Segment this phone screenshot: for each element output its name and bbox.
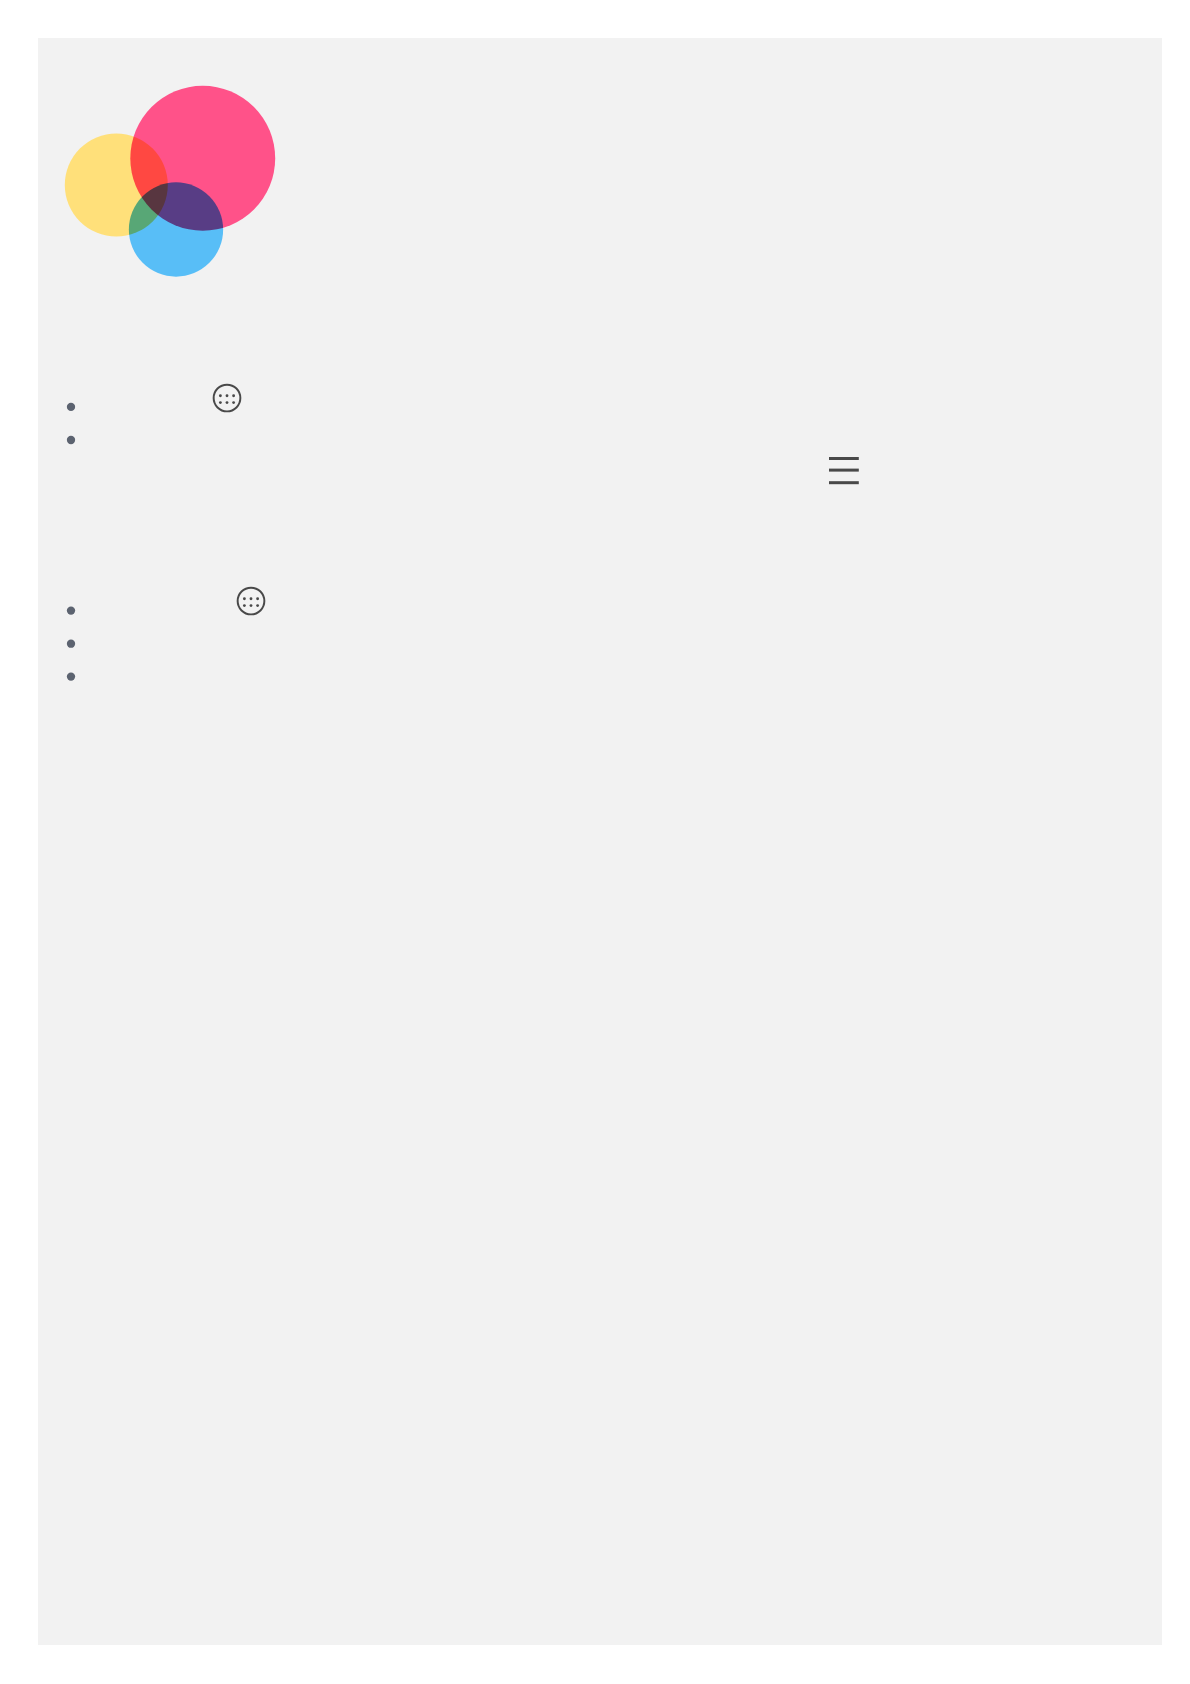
button[interactable]: All apps [211,382,243,414]
button[interactable]: All apps [235,585,267,617]
button[interactable]: Menu [824,451,864,490]
